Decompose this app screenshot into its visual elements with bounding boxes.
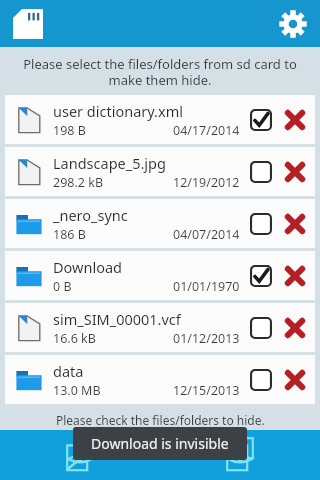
staticText: 16.6 kB: [53, 330, 96, 347]
button[interactable]: Unchecked: [244, 311, 278, 345]
button[interactable]: Settings: [274, 5, 312, 43]
staticText: 04/07/2014: [173, 226, 240, 243]
staticText: data: [53, 361, 84, 381]
button[interactable]: data: [5, 355, 315, 404]
button[interactable]: SD card: [10, 6, 46, 42]
button[interactable]: Landscape_5.jpg: [5, 147, 315, 196]
staticText: 198 B: [53, 122, 86, 139]
button[interactable]: Checked: [244, 259, 278, 293]
staticText: 04/17/2014: [173, 122, 240, 139]
button[interactable]: Remove: [278, 103, 312, 137]
button[interactable]: Remove: [278, 155, 312, 189]
staticText: user dictionary.xml: [53, 101, 183, 121]
staticText: sim_SIM_00001.vcf: [53, 309, 181, 329]
button[interactable]: Download: [5, 251, 315, 300]
button[interactable]: Remove: [278, 259, 312, 293]
button[interactable]: Unhide files: [160, 430, 320, 480]
button[interactable]: _nero_sync: [5, 199, 315, 248]
button[interactable]: Checked: [244, 103, 278, 137]
button[interactable]: user dictionary.xml: [5, 95, 315, 144]
staticText: Download: [53, 257, 122, 277]
staticText: Landscape_5.jpg: [53, 153, 166, 173]
staticText: _nero_sync: [53, 205, 128, 225]
staticText: 13.0 MB: [53, 382, 101, 399]
button[interactable]: Unchecked: [244, 155, 278, 189]
button[interactable]: Remove: [278, 311, 312, 345]
staticText: 186 B: [53, 226, 86, 243]
staticText: 01/12/2013: [173, 330, 240, 347]
staticText: 01/01/1970: [173, 278, 240, 295]
staticText: Please check the files/folders to hide.: [56, 412, 265, 428]
button[interactable]: Remove: [278, 363, 312, 397]
button[interactable]: Remove: [278, 207, 312, 241]
button[interactable]: sim_SIM_00001.vcf: [5, 303, 315, 352]
staticText: 298.2 kB: [53, 174, 104, 191]
staticText: 12/19/2012: [173, 174, 240, 191]
staticText: Download is invisible: [91, 434, 229, 453]
button[interactable]: Unchecked: [244, 363, 278, 397]
staticText: Please select the files/folders from sd …: [18, 55, 302, 88]
button[interactable]: Hide selected files: [0, 430, 160, 480]
staticText: 12/15/2013: [173, 382, 240, 399]
button[interactable]: Unchecked: [244, 207, 278, 241]
staticText: 0 B: [53, 278, 72, 295]
